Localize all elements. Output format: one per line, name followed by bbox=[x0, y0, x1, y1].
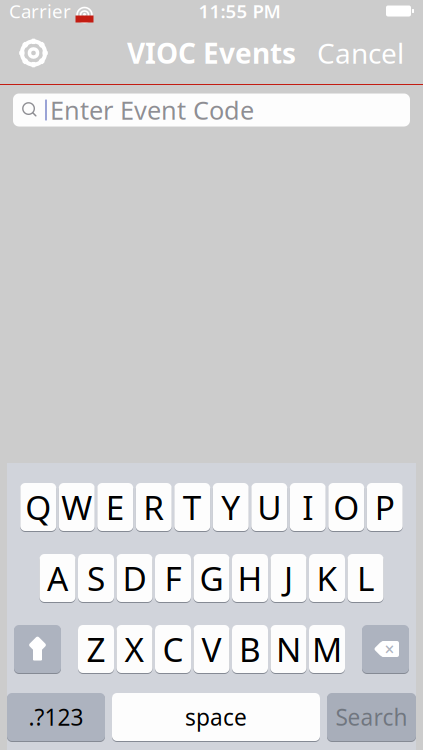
button[interactable]: Search bbox=[327, 692, 416, 741]
button[interactable]: Cancel bbox=[306, 26, 415, 80]
button[interactable]: V bbox=[193, 624, 229, 673]
button[interactable]: I bbox=[290, 482, 326, 531]
staticText: U bbox=[257, 485, 281, 529]
staticText: X bbox=[124, 627, 144, 671]
staticText: B bbox=[239, 627, 261, 671]
staticText: Enter Event Code bbox=[50, 93, 254, 127]
staticText: Cancel bbox=[317, 34, 404, 72]
staticText: V bbox=[201, 627, 221, 671]
staticText: O bbox=[333, 485, 359, 529]
staticText: Z bbox=[86, 627, 105, 671]
button[interactable]: R bbox=[136, 482, 172, 531]
staticText: N bbox=[276, 627, 301, 671]
staticText: R bbox=[143, 485, 164, 529]
staticText: Q bbox=[25, 485, 51, 529]
button[interactable]: E bbox=[97, 482, 133, 531]
button[interactable]: Delete bbox=[362, 624, 409, 673]
staticText: A bbox=[47, 556, 68, 600]
button[interactable]: U bbox=[251, 482, 287, 531]
button[interactable]: D bbox=[116, 553, 152, 602]
staticText: I bbox=[302, 485, 313, 529]
button[interactable]: N bbox=[270, 624, 306, 673]
button[interactable]: J bbox=[270, 553, 306, 602]
staticText: T bbox=[183, 485, 202, 529]
staticText: Y bbox=[221, 485, 240, 529]
button[interactable]: Z bbox=[78, 624, 114, 673]
button[interactable]: Q bbox=[20, 482, 56, 531]
staticText: .?123 bbox=[28, 702, 83, 732]
button[interactable]: space bbox=[112, 692, 320, 741]
button[interactable]: C bbox=[155, 624, 191, 673]
button[interactable]: Y bbox=[213, 482, 249, 531]
staticText: F bbox=[164, 556, 181, 600]
staticText: VIOC Events bbox=[127, 34, 296, 72]
staticText: S bbox=[87, 556, 105, 600]
staticText: Search bbox=[335, 702, 407, 732]
button[interactable]: P bbox=[367, 482, 403, 531]
button[interactable]: W bbox=[59, 482, 95, 531]
button[interactable]: T bbox=[174, 482, 210, 531]
staticText: K bbox=[316, 556, 337, 600]
staticText: E bbox=[106, 485, 125, 529]
button[interactable]: K bbox=[309, 553, 345, 602]
button[interactable]: O bbox=[328, 482, 364, 531]
button[interactable]: H bbox=[232, 553, 268, 602]
staticText: G bbox=[199, 556, 223, 600]
staticText: 11:55 PM bbox=[198, 0, 280, 23]
button[interactable]: X bbox=[116, 624, 152, 673]
button[interactable]: G bbox=[193, 553, 229, 602]
staticText: W bbox=[61, 485, 92, 529]
staticText: H bbox=[237, 556, 262, 600]
staticText: × bbox=[384, 637, 394, 660]
button[interactable]: M bbox=[309, 624, 345, 673]
staticText: P bbox=[375, 485, 395, 529]
button[interactable]: F bbox=[155, 553, 191, 602]
staticText: D bbox=[122, 556, 146, 600]
button[interactable]: S bbox=[78, 553, 114, 602]
button[interactable]: Shift bbox=[14, 624, 61, 673]
staticText: J bbox=[284, 556, 293, 600]
button[interactable]: Settings bbox=[8, 31, 59, 74]
staticText: space bbox=[185, 702, 247, 732]
staticText: L bbox=[357, 556, 374, 600]
button[interactable]: B bbox=[232, 624, 268, 673]
staticText: Carrier bbox=[9, 0, 71, 23]
button[interactable]: Enter Event Code bbox=[13, 93, 410, 126]
staticText: C bbox=[162, 627, 183, 671]
button[interactable]: L bbox=[347, 553, 383, 602]
button[interactable]: A bbox=[39, 553, 75, 602]
staticText: M bbox=[312, 627, 342, 671]
button[interactable]: .?123 bbox=[7, 692, 105, 741]
